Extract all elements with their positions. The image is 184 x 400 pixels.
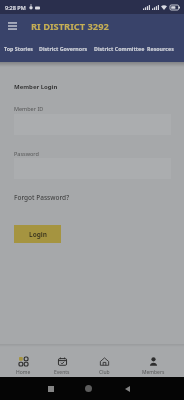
button[interactable]: District Committee [94,38,145,59]
staticText: Member Login [14,83,58,91]
staticText: District Committee [94,45,145,52]
staticText: Events [54,369,70,376]
staticText: RI DISTRICT 3292 [31,20,109,33]
button[interactable]: Forgot Password? [14,193,70,202]
staticText: Password [14,150,39,157]
button[interactable]: Open navigation menu [0,14,24,38]
button[interactable]: Login [14,225,61,243]
button[interactable]: Home [3,357,43,376]
button[interactable]: Events [42,357,82,376]
button[interactable]: Recent apps [42,380,59,397]
button[interactable]: Back [119,380,136,397]
button[interactable]: District Governors [39,38,88,59]
staticText: Member ID [14,105,44,112]
staticText: Login [29,230,47,239]
button[interactable]: Resources [147,38,174,59]
staticText: 9:28 PM [5,4,26,11]
staticText: Club [99,369,110,376]
button[interactable]: Club [84,357,124,376]
staticText: District Governors [39,45,88,52]
staticText: Top Stories [4,45,34,52]
button[interactable]: Top Stories [4,38,34,59]
staticText: Members [142,369,165,376]
staticText: Resources [147,45,174,52]
button[interactable]: Members [133,357,173,376]
button[interactable]: Home [80,380,97,397]
staticText: Home [16,369,31,376]
